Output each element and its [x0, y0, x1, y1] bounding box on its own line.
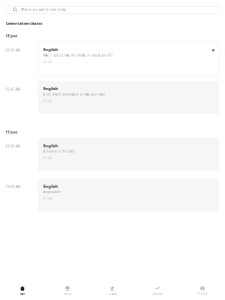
staticText: 19 June	[5, 130, 17, 134]
staticText: Learn	[19, 292, 25, 296]
staticText: Activity	[153, 292, 162, 296]
button[interactable]: English	[38, 81, 219, 114]
button[interactable]: Activity	[135, 284, 180, 298]
staticText: Profile	[198, 292, 207, 296]
staticText: 10:00 AM	[5, 185, 20, 189]
button[interactable]: Study	[45, 284, 90, 298]
staticText: $1.40	[43, 197, 52, 201]
staticText: 05:00 AM	[5, 48, 20, 52]
staticText: What do you want to learn today?	[21, 8, 66, 12]
staticText: $1.40	[43, 60, 52, 64]
staticText: Classes	[108, 292, 116, 296]
staticText: $1.40	[43, 99, 52, 103]
button[interactable]: English	[38, 178, 219, 211]
staticText: English	[43, 143, 58, 148]
staticText: A job simple conversation to make your t…	[43, 93, 105, 96]
staticText: $1.40	[43, 156, 52, 160]
staticText: Angry subtle	[43, 190, 61, 194]
staticText: Conversation classes	[5, 21, 42, 26]
staticText: A busy lot in this daily	[43, 150, 74, 153]
button[interactable]: Learn	[0, 284, 45, 298]
staticText: 05:45 AM	[5, 87, 20, 91]
staticText: Make 1 subject make the mistake in natur…	[43, 54, 112, 57]
staticText: English	[43, 86, 58, 91]
button[interactable]: English	[38, 42, 219, 77]
button[interactable]: English	[38, 138, 219, 171]
button[interactable]: Classes	[90, 284, 135, 298]
staticText: English	[43, 183, 58, 189]
staticText: 09:00 AM	[5, 144, 20, 148]
staticText: Study	[64, 292, 71, 296]
staticText: English	[43, 47, 58, 52]
button[interactable]: What do you want to learn today?	[5, 6, 219, 13]
button[interactable]: Profile	[180, 284, 225, 298]
staticText: 18 June	[5, 34, 17, 38]
